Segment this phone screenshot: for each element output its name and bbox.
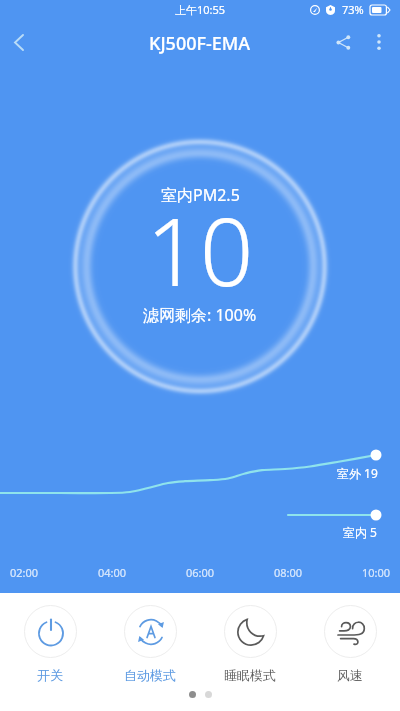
- button[interactable]: Share: [321, 20, 365, 64]
- staticText: 自动模式: [124, 667, 176, 683]
- staticText: 上午10:55: [175, 2, 226, 17]
- staticText: 睡眠模式: [224, 667, 276, 683]
- staticText: 风速: [337, 667, 363, 683]
- button[interactable]: 风速: [300, 593, 400, 711]
- staticText: 滤网剩余: 100%: [143, 304, 257, 326]
- staticText: 04:00: [98, 565, 127, 580]
- staticText: 室内PM2.5: [161, 184, 240, 206]
- button[interactable]: Back: [0, 20, 38, 64]
- button[interactable]: More options: [362, 20, 396, 64]
- staticText: 10:00: [362, 565, 391, 580]
- staticText: 06:00: [186, 565, 215, 580]
- staticText: 开关: [37, 667, 63, 683]
- staticText: 08:00: [274, 565, 303, 580]
- staticText: KJ500F-EMA: [149, 31, 251, 56]
- staticText: 室外 19: [337, 465, 378, 481]
- button[interactable]: 开关: [0, 593, 100, 711]
- button[interactable]: 睡眠模式: [200, 593, 300, 711]
- staticText: 02:00: [10, 565, 39, 580]
- staticText: 73%: [342, 2, 364, 17]
- staticText: 室内 5: [343, 524, 377, 540]
- staticText: 10: [146, 186, 254, 314]
- button[interactable]: 自动模式: [100, 593, 200, 711]
